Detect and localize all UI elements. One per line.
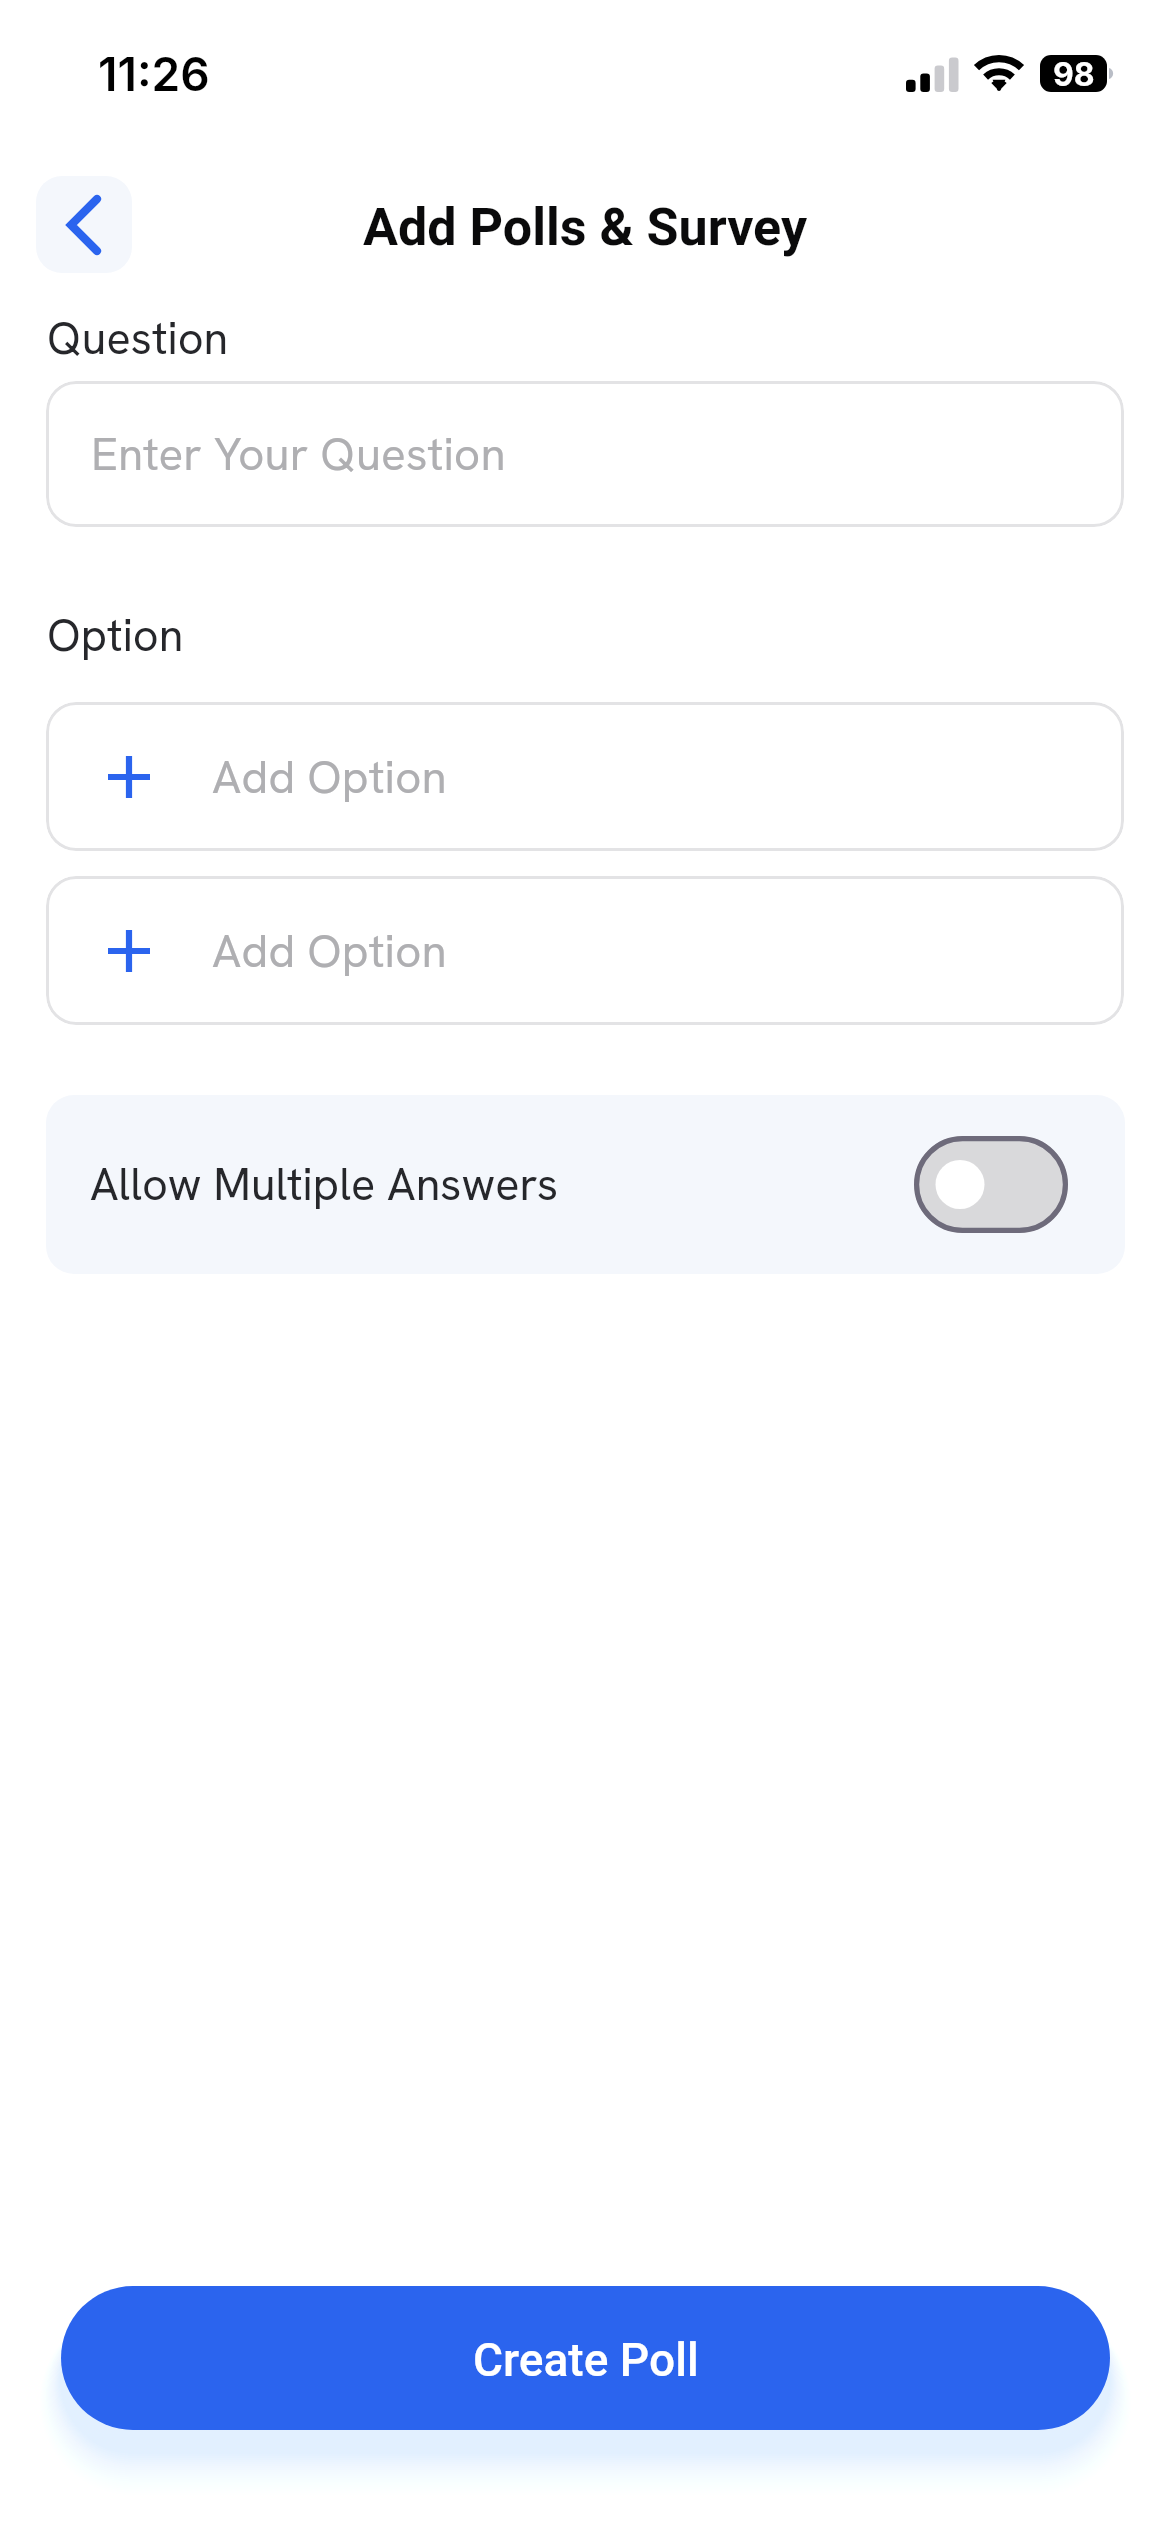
staticText: Add Option (212, 921, 447, 981)
staticText: Option (47, 606, 184, 665)
button[interactable]: Add Option (46, 876, 1124, 1025)
staticText: Enter Your Question (91, 424, 506, 484)
other: Wi-Fi (974, 54, 1024, 92)
button[interactable]: Allow Multiple Answers (46, 1095, 1125, 1274)
staticText: 98 (1053, 55, 1095, 92)
button[interactable]: Enter Your Question (46, 381, 1124, 527)
button[interactable]: Back (36, 176, 132, 273)
staticText: Allow Multiple Answers (90, 1155, 559, 1214)
button[interactable]: Create Poll (61, 2286, 1110, 2430)
other: Cellular signal (906, 56, 958, 92)
staticText: Question (47, 309, 229, 368)
staticText: Create Poll (473, 2333, 699, 2387)
staticText: Add Option (212, 747, 447, 807)
button[interactable]: Add Option (46, 702, 1124, 851)
staticText: 11:26 (98, 46, 210, 102)
staticText: Add Polls & Survey (0, 197, 1170, 2532)
